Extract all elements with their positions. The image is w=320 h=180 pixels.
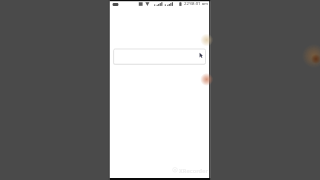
staticText: 22% [184,0,193,6]
staticText: XRecorder [179,167,208,175]
staticText: 8:01 am [192,0,209,6]
button[interactable]: Search [114,49,206,64]
